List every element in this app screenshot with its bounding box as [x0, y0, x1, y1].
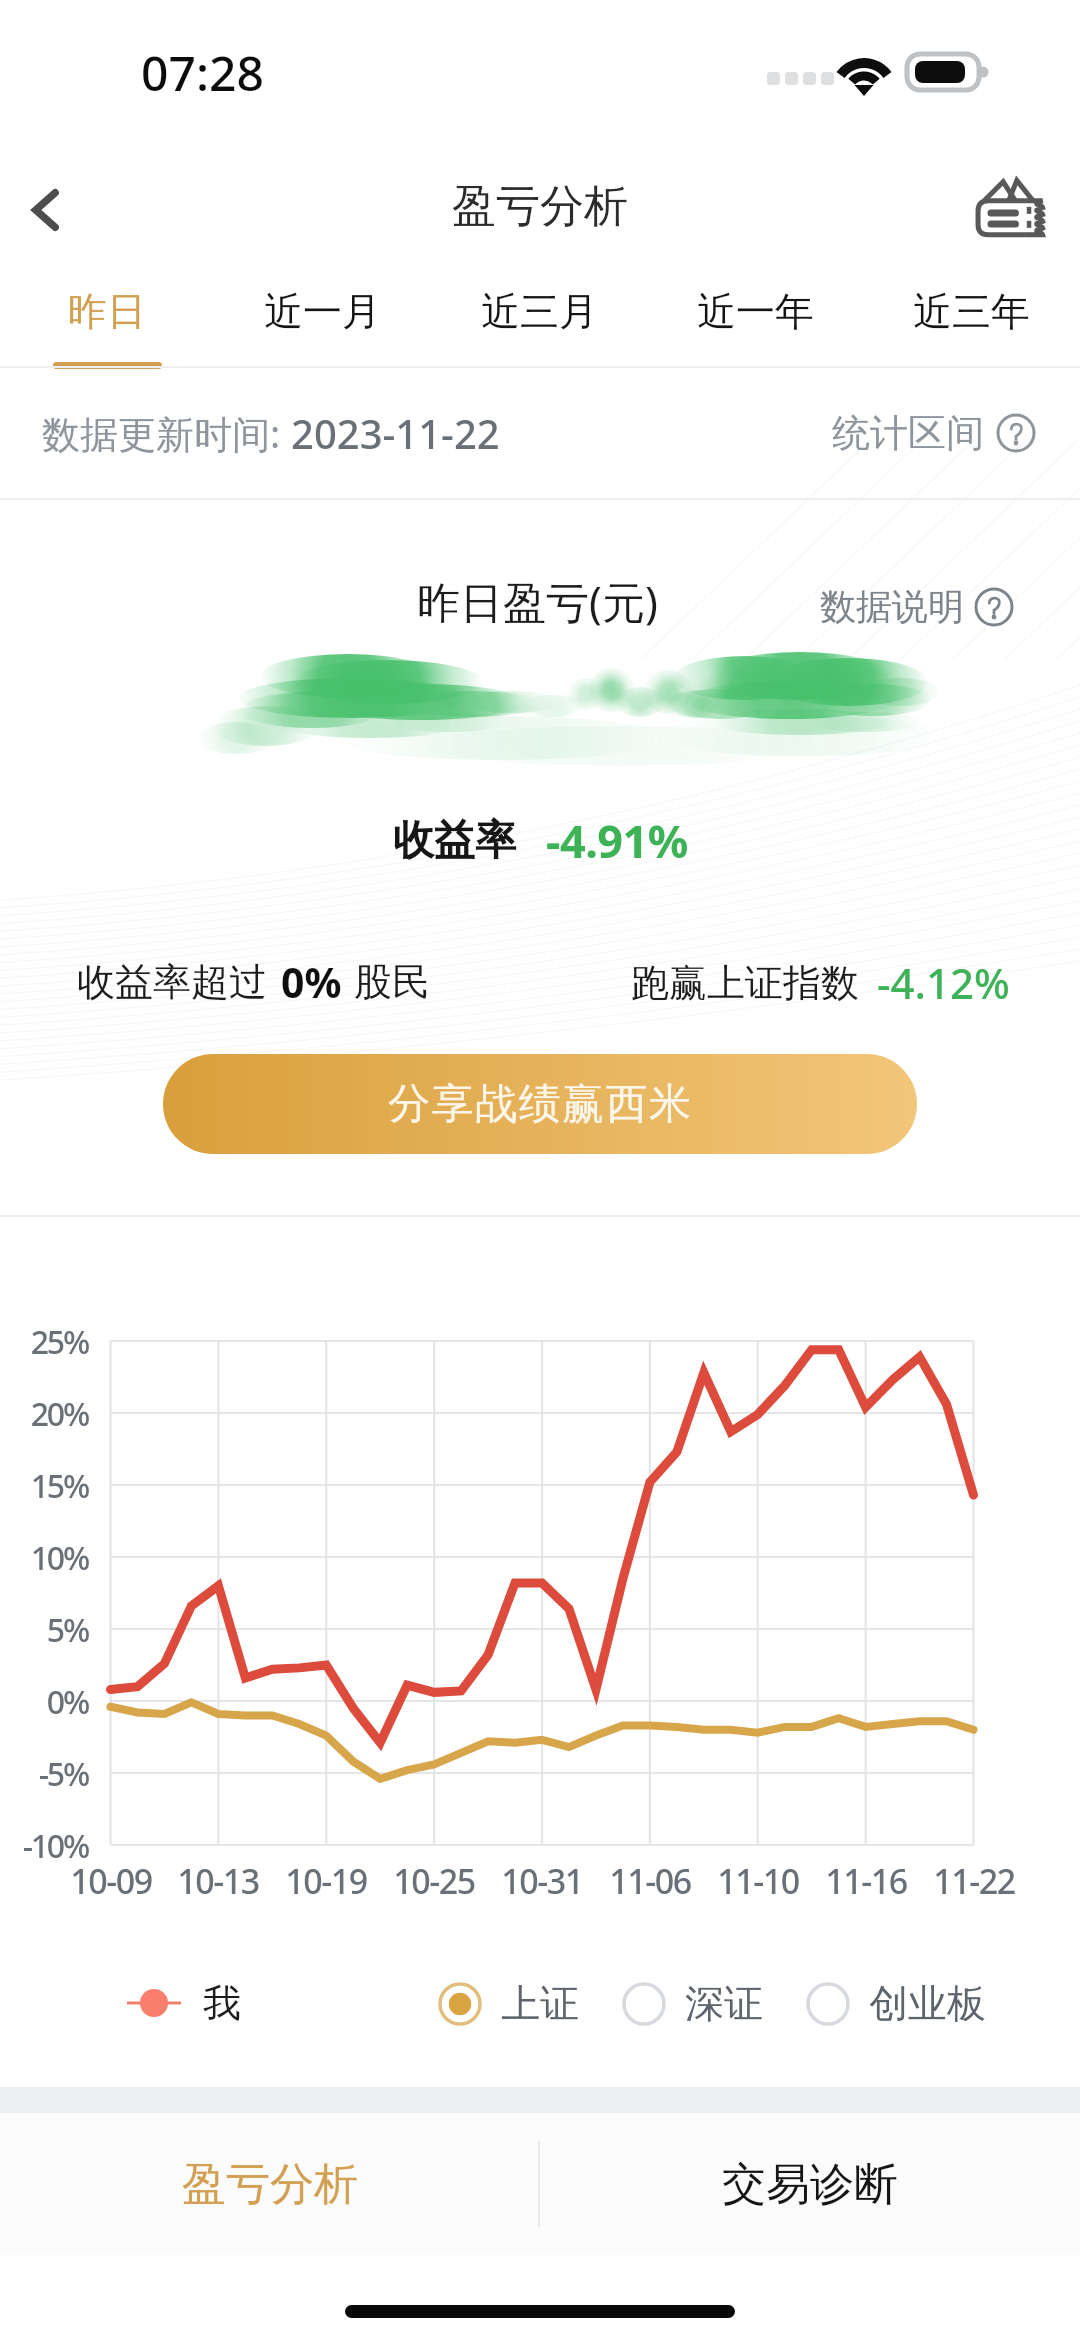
staticText: 2023-11-22: [291, 406, 500, 460]
staticText: -4.12%: [877, 954, 1010, 1011]
button[interactable]: 盈亏分析: [0, 2113, 540, 2255]
staticText: 近一年: [697, 287, 814, 336]
button[interactable]: 近一年: [681, 262, 830, 360]
button[interactable]: Coupons: [976, 175, 1044, 243]
staticText: 收益率超过: [77, 958, 267, 1006]
staticText: 11-16: [786, 1858, 946, 1904]
button[interactable]: Back: [12, 174, 84, 246]
staticText: 10-31: [462, 1858, 622, 1904]
staticText: 统计区间: [832, 409, 984, 457]
staticText: 5%: [0, 1608, 88, 1652]
staticText: 10-19: [246, 1858, 406, 1904]
staticText: 盈亏分析: [182, 2157, 358, 2212]
button[interactable]: 近一月: [248, 262, 397, 360]
staticText: 昨日: [68, 287, 146, 336]
staticText: 0%: [0, 1680, 88, 1724]
staticText: 07:28: [141, 40, 264, 105]
staticText: 数据更新时间:: [42, 407, 291, 459]
staticText: 10%: [0, 1536, 88, 1580]
staticText: 11-22: [894, 1858, 1054, 1904]
staticText: 我: [203, 1979, 241, 2027]
staticText: 上证: [501, 1979, 579, 2028]
staticText: 0%: [281, 954, 342, 1010]
staticText: 10-09: [31, 1858, 191, 1904]
staticText: 深证: [685, 1979, 763, 2028]
staticText: 股民: [354, 958, 430, 1006]
button[interactable]: 统计区间: [832, 409, 1036, 457]
staticText: 11-06: [570, 1858, 730, 1904]
button[interactable]: 创业板: [805, 1979, 986, 2028]
button[interactable]: 我: [125, 1979, 241, 2027]
button[interactable]: 上证: [437, 1979, 579, 2028]
staticText: 10-13: [138, 1858, 298, 1904]
staticText: 20%: [0, 1392, 88, 1436]
staticText: 数据说明: [820, 584, 964, 629]
staticText: 分享战绩赢西米: [388, 1078, 693, 1131]
button[interactable]: 数据说明: [820, 584, 1014, 629]
button[interactable]: 近三月: [465, 262, 614, 360]
staticText: 交易诊断: [722, 2157, 898, 2212]
staticText: 昨日盈亏(元): [417, 572, 658, 631]
button[interactable]: 近三年: [897, 262, 1046, 360]
staticText: 收益率: [393, 815, 516, 867]
staticText: 近一月: [264, 287, 381, 336]
staticText: -4.91%: [546, 810, 688, 871]
staticText: -5%: [0, 1752, 88, 1796]
button[interactable]: 交易诊断: [540, 2113, 1080, 2255]
staticText: 15%: [0, 1464, 88, 1508]
staticText: -10%: [0, 1824, 88, 1868]
staticText: 盈亏分析: [452, 179, 628, 234]
button[interactable]: 深证: [621, 1979, 763, 2028]
staticText: 10-25: [354, 1858, 514, 1904]
staticText: 近三月: [481, 287, 598, 336]
staticText: 创业板: [869, 1979, 986, 2028]
button[interactable]: 分享战绩赢西米: [163, 1054, 917, 1154]
staticText: 25%: [0, 1320, 88, 1364]
staticText: 近三年: [913, 287, 1030, 336]
button[interactable]: 昨日: [52, 262, 162, 360]
staticText: 跑赢上证指数: [631, 959, 859, 1007]
staticText: 11-10: [678, 1858, 838, 1904]
